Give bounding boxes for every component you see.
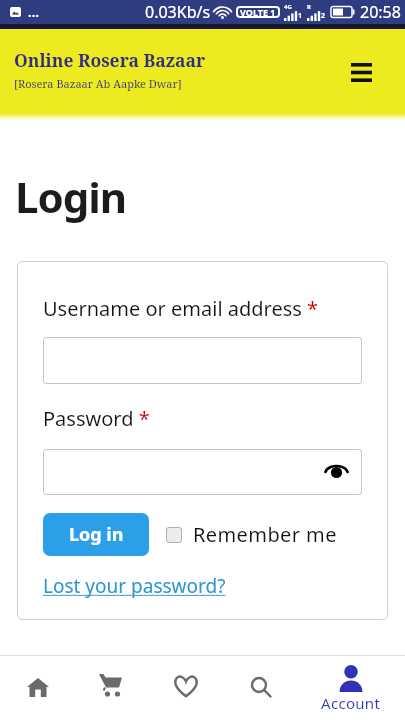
- staticText: R: [307, 3, 311, 11]
- button[interactable]: [243, 669, 279, 705]
- button[interactable]: [349, 60, 373, 84]
- staticText: Username or email address *: [43, 295, 319, 322]
- staticText: 4G: [284, 3, 292, 11]
- staticText: 0.03Kb/s: [145, 1, 211, 23]
- staticText: Online Rosera Bazaar: [14, 48, 206, 72]
- staticText: Log in: [69, 522, 124, 547]
- button[interactable]: [20, 669, 56, 705]
- button[interactable]: Lost your password?: [43, 573, 226, 599]
- button[interactable]: [166, 527, 182, 543]
- staticText: Remember me: [193, 521, 337, 548]
- button[interactable]: [43, 449, 362, 495]
- staticText: VOLTE 1: [240, 6, 276, 18]
- staticText: 1: [298, 11, 303, 21]
- button[interactable]: [43, 337, 362, 384]
- button[interactable]: Log in: [43, 513, 149, 556]
- staticText: 2: [321, 11, 326, 21]
- staticText: [Rosera Bazaar Ab Aapke Dwar]: [14, 76, 182, 91]
- staticText: Password *: [43, 405, 150, 432]
- button[interactable]: [92, 667, 128, 703]
- button[interactable]: [168, 668, 204, 704]
- staticText: Account: [321, 693, 381, 713]
- staticText: 20:58: [360, 1, 401, 23]
- staticText: Login: [15, 168, 127, 225]
- button[interactable]: Account: [320, 665, 382, 719]
- staticText: ...: [28, 3, 39, 21]
